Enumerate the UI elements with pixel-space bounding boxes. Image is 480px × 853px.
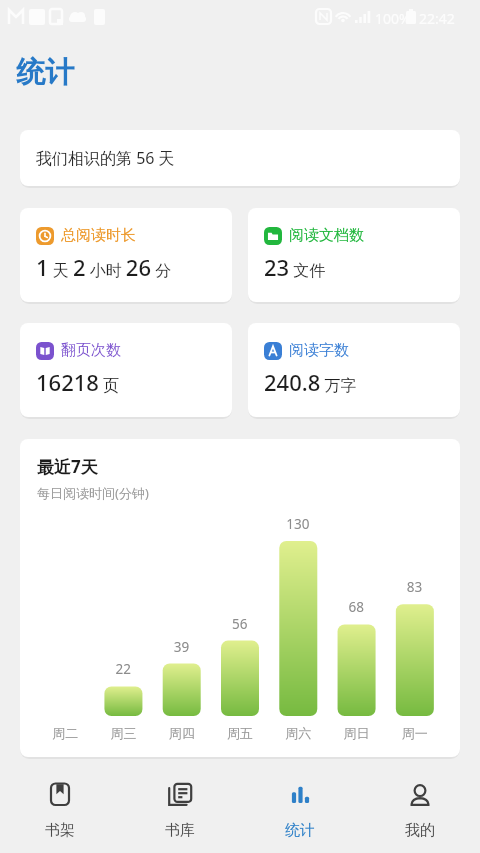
button[interactable]: 统计 [240, 757, 360, 853]
staticText: 总阅读时长 [61, 226, 136, 245]
staticText: 书库 [165, 821, 195, 840]
staticText: 23 文件 [264, 252, 326, 282]
staticText: 书架 [45, 821, 75, 840]
button[interactable]: 我们相识的第 56 天 [20, 130, 460, 186]
staticText: 16218 页 [36, 367, 120, 397]
staticText: 每日阅读时间(分钟) [37, 484, 149, 502]
staticText: 我的 [405, 821, 435, 840]
button[interactable]: 书库 [120, 757, 240, 853]
staticText: 统计 [16, 54, 74, 91]
button[interactable] [20, 323, 232, 417]
staticText: 1 天 2 小时 26 分 [36, 252, 172, 282]
staticText: 统计 [285, 821, 315, 840]
staticText: 阅读字数 [289, 341, 349, 360]
staticText: 我们相识的第 56 天 [36, 147, 175, 169]
button[interactable] [248, 323, 460, 417]
staticText: 22:42 [419, 9, 455, 28]
staticText: 100% [375, 9, 411, 28]
staticText: 翻页次数 [61, 341, 121, 360]
staticText: 240.8 万字 [264, 367, 357, 397]
staticText: 阅读文档数 [289, 226, 364, 245]
button[interactable]: 我的 [360, 757, 480, 853]
button[interactable]: 书架 [0, 757, 120, 853]
button[interactable] [20, 208, 232, 302]
button[interactable] [248, 208, 460, 302]
staticText: 最近7天 [37, 455, 98, 478]
